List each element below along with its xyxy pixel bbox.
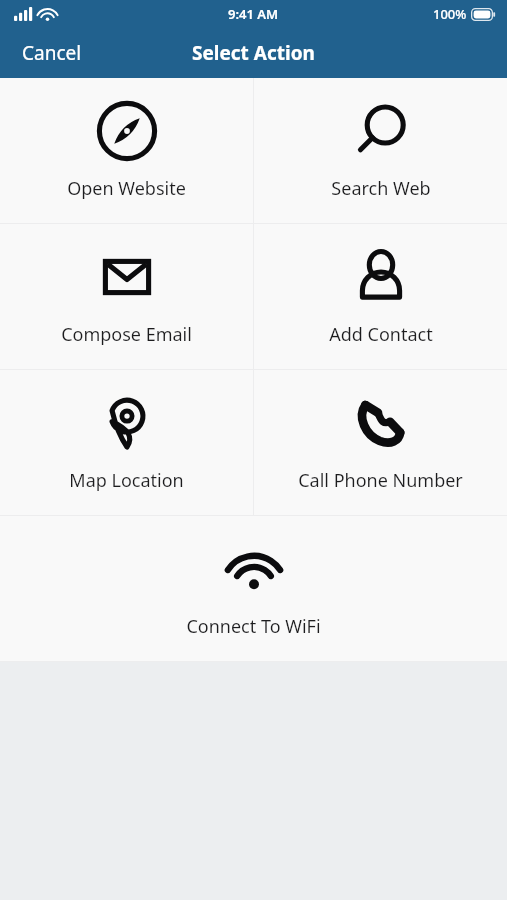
button[interactable]: Compose Email	[0, 224, 253, 369]
staticText: Search Web	[331, 176, 431, 201]
staticText: Select Action	[192, 40, 315, 66]
staticText: 100%	[433, 5, 467, 23]
staticText: Add Contact	[329, 322, 433, 347]
button[interactable]: Add Contact	[254, 224, 507, 369]
staticText: 9:41 AM	[228, 5, 279, 23]
button[interactable]: Call Phone Number	[254, 370, 507, 515]
staticText: Map Location	[69, 468, 184, 493]
button[interactable]: Connect To WiFi	[0, 516, 507, 661]
staticText: Open Website	[67, 176, 186, 201]
button[interactable]: Search Web	[254, 78, 507, 223]
button[interactable]: Open Website	[0, 78, 253, 223]
staticText: Connect To WiFi	[186, 614, 321, 639]
button[interactable]: Cancel	[0, 32, 104, 74]
staticText: Cancel	[22, 40, 82, 66]
staticText: Compose Email	[61, 322, 192, 347]
button[interactable]: Map Location	[0, 370, 253, 515]
staticText: Call Phone Number	[298, 468, 463, 493]
